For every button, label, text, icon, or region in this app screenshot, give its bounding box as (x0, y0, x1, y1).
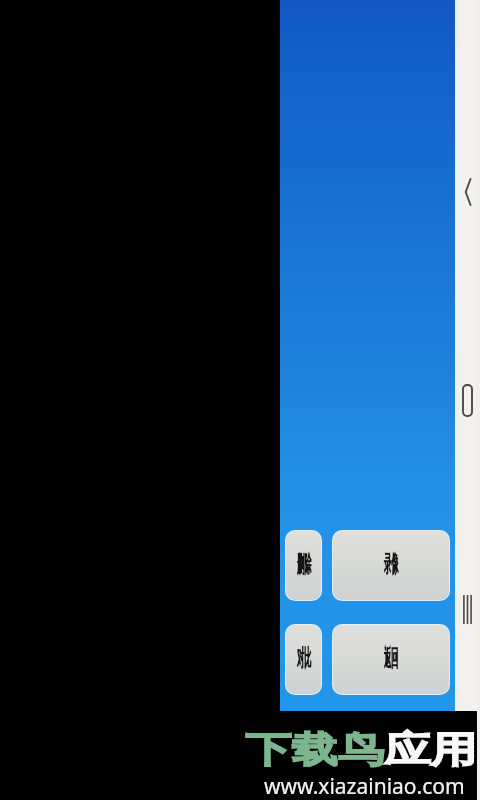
button[interactable]: Home (455, 378, 480, 422)
staticText: 返回 (384, 645, 398, 674)
staticText: www.xiazainiao.com (264, 772, 465, 800)
staticText: 应用 (384, 727, 477, 772)
button[interactable]: 对比 (286, 625, 321, 694)
staticText: 录像 (384, 551, 398, 580)
button[interactable]: Back (455, 170, 480, 214)
button[interactable]: 删除 (286, 531, 321, 600)
button[interactable]: Recents (455, 587, 480, 631)
staticText: 删除 (297, 551, 311, 580)
button[interactable]: 返回 (333, 625, 449, 694)
staticText: 下载鸟 (245, 727, 384, 772)
button[interactable]: 录像 (333, 531, 449, 600)
staticText: 对比 (297, 645, 311, 674)
